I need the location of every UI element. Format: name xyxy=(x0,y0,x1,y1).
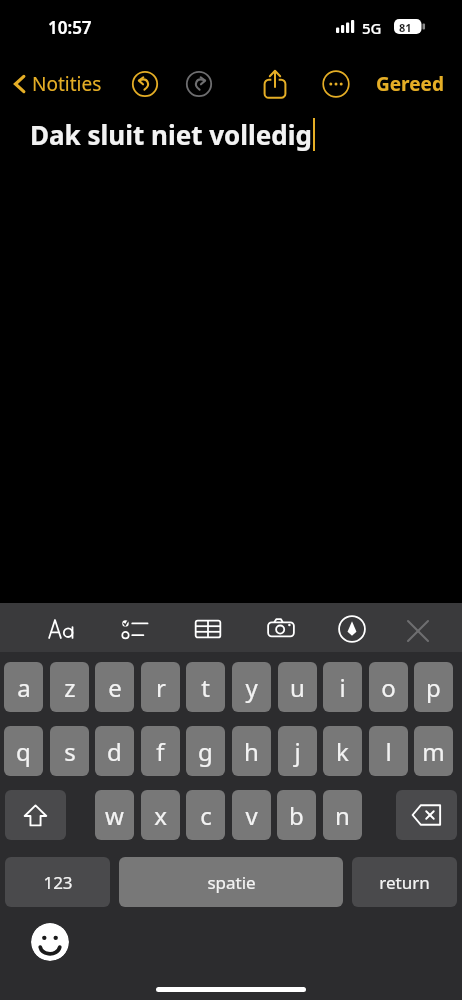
button[interactable]: u xyxy=(278,662,317,712)
staticText: spatie xyxy=(207,871,256,894)
button[interactable]: h xyxy=(232,726,271,776)
button[interactable]: Gereed xyxy=(368,56,452,112)
button[interactable]: a xyxy=(4,662,43,712)
button[interactable]: e xyxy=(95,662,134,712)
staticText: y xyxy=(245,671,258,704)
button[interactable]: t xyxy=(186,662,225,712)
button[interactable]: Share xyxy=(256,65,294,103)
staticText: s xyxy=(64,735,76,768)
button[interactable]: Text format xyxy=(40,607,84,651)
staticText: o xyxy=(381,671,396,704)
button[interactable]: y xyxy=(232,662,271,712)
button[interactable]: g xyxy=(186,726,225,776)
button[interactable]: Undo xyxy=(127,66,163,102)
button[interactable]: Emoji xyxy=(31,923,69,961)
button[interactable]: Table xyxy=(186,607,230,651)
staticText: l xyxy=(385,735,392,768)
button[interactable]: l xyxy=(369,726,408,776)
button[interactable]: k xyxy=(323,726,362,776)
staticText: Gereed xyxy=(376,71,444,97)
button[interactable]: Redo xyxy=(181,66,217,102)
staticText: m xyxy=(422,735,445,768)
staticText: u xyxy=(290,671,305,704)
button[interactable]: w xyxy=(95,790,134,840)
button[interactable]: v xyxy=(232,790,271,840)
button[interactable]: c xyxy=(186,790,225,840)
button[interactable]: f xyxy=(141,726,180,776)
button[interactable]: Camera xyxy=(259,607,303,651)
staticText: 10:57 xyxy=(48,16,92,39)
staticText: x xyxy=(154,799,167,832)
staticText: f xyxy=(156,735,165,768)
staticText: q xyxy=(16,735,31,768)
button[interactable]: o xyxy=(369,662,408,712)
staticText: h xyxy=(244,735,259,768)
staticText: j xyxy=(294,735,301,768)
staticText: t xyxy=(201,671,210,704)
button[interactable]: b xyxy=(277,790,316,840)
button[interactable]: m xyxy=(414,726,453,776)
button[interactable]: spatie xyxy=(119,857,343,907)
button[interactable]: x xyxy=(141,790,180,840)
staticText: 81 xyxy=(399,20,412,35)
button[interactable]: Close keyboard xyxy=(396,609,440,653)
button[interactable]: 123 xyxy=(5,857,110,907)
button[interactable]: Backspace xyxy=(396,790,457,840)
button[interactable]: Notities xyxy=(8,56,108,112)
staticText: Dak sluit niet volledig xyxy=(30,117,312,152)
button[interactable]: return xyxy=(352,857,457,907)
staticText: i xyxy=(339,671,346,704)
staticText: 5G xyxy=(362,18,382,38)
staticText: v xyxy=(245,799,258,832)
button[interactable]: s xyxy=(50,726,89,776)
button[interactable]: Checklist xyxy=(113,607,157,651)
button[interactable]: j xyxy=(278,726,317,776)
staticText: k xyxy=(336,735,349,768)
button[interactable]: d xyxy=(95,726,134,776)
staticText: e xyxy=(108,671,122,704)
staticText: r xyxy=(156,671,166,704)
staticText: g xyxy=(198,735,213,768)
staticText: p xyxy=(426,671,441,704)
staticText: z xyxy=(64,671,76,704)
button[interactable]: Shift xyxy=(5,790,66,840)
staticText: Notities xyxy=(32,71,102,97)
staticText: 123 xyxy=(43,871,73,894)
button[interactable]: More xyxy=(318,66,354,102)
button[interactable]: r xyxy=(141,662,180,712)
button[interactable]: q xyxy=(4,726,43,776)
button[interactable]: z xyxy=(50,662,89,712)
staticText: d xyxy=(107,735,122,768)
button[interactable]: i xyxy=(323,662,362,712)
button[interactable]: Markup xyxy=(330,607,374,651)
button[interactable]: n xyxy=(323,790,362,840)
staticText: a xyxy=(17,671,31,704)
staticText: return xyxy=(379,871,430,894)
button[interactable]: p xyxy=(414,662,453,712)
staticText: w xyxy=(105,799,124,832)
staticText: n xyxy=(335,799,350,832)
staticText: c xyxy=(200,799,212,832)
staticText: b xyxy=(289,799,304,832)
